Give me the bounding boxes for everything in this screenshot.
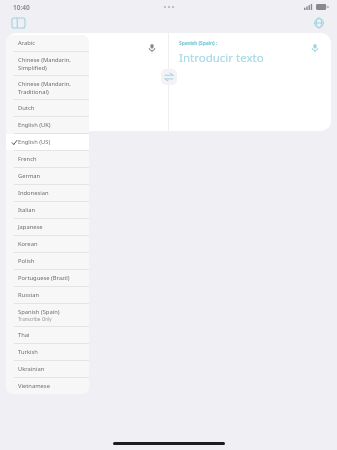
button[interactable]: Spanish (Spain) — [6, 304, 89, 326]
staticText: Japanese — [18, 223, 43, 231]
button[interactable]: Speak English — [145, 41, 159, 55]
button[interactable]: Polish — [6, 253, 89, 269]
button[interactable]: Russian — [6, 287, 89, 303]
button[interactable]: Vietnamese — [6, 378, 89, 394]
button[interactable]: Arabic — [6, 35, 89, 51]
staticText: Thai — [18, 331, 30, 339]
staticText: Chinese (Mandarin, Traditional) — [18, 80, 71, 95]
staticText: German — [18, 172, 41, 180]
staticText: Polish — [18, 257, 35, 265]
staticText: Russian — [18, 291, 40, 299]
button[interactable]: Turkish — [6, 344, 89, 360]
staticText: Arabic — [18, 39, 36, 47]
staticText: Korean — [18, 240, 38, 248]
button[interactable]: Speak Spanish — [308, 41, 322, 55]
staticText: Introducir texto — [179, 50, 264, 66]
staticText: Spanish (Spain) — [18, 308, 60, 316]
button[interactable]: Ukrainian — [6, 361, 89, 377]
staticText: Vietnamese — [18, 382, 50, 390]
staticText: Spanish (Spain) : — [179, 40, 218, 47]
staticText: English (US) : — [16, 40, 47, 47]
staticText: Turkish — [18, 348, 38, 356]
button[interactable]: Italian — [6, 202, 89, 218]
staticText: Chinese (Mandarin, Simplified) — [18, 56, 71, 71]
button[interactable]: Toggle sidebar — [8, 13, 28, 33]
button[interactable]: Dutch — [6, 100, 89, 116]
staticText: English (US) — [18, 138, 51, 146]
staticText: Enter text — [16, 50, 69, 66]
button[interactable]: French — [6, 151, 89, 167]
button[interactable]: Thai — [6, 327, 89, 343]
button[interactable]: English (UK) — [6, 117, 89, 133]
staticText: French — [18, 155, 37, 163]
button[interactable]: Chinese (Mandarin, Simplified) — [6, 52, 89, 75]
button[interactable]: English (US) — [6, 134, 89, 150]
staticText: Dutch — [18, 104, 35, 112]
staticText: Indonesian — [18, 189, 49, 197]
staticText: Italian — [18, 206, 36, 214]
staticText: English (UK) — [18, 121, 51, 129]
button[interactable]: Swap languages — [161, 69, 177, 85]
staticText: Ukrainian — [18, 365, 45, 373]
button[interactable]: Korean — [6, 236, 89, 252]
staticText: 10:40 — [13, 3, 30, 12]
button[interactable]: Chinese (Mandarin, Traditional) — [6, 76, 89, 99]
button[interactable]: German — [6, 168, 89, 184]
button[interactable]: Japanese — [6, 219, 89, 235]
button[interactable]: Portuguese (Brazil) — [6, 270, 89, 286]
button[interactable]: Indonesian — [6, 185, 89, 201]
button[interactable]: Settings — [309, 13, 329, 33]
staticText: Transcribe Only — [18, 316, 52, 322]
staticText: Portuguese (Brazil) — [18, 274, 70, 282]
